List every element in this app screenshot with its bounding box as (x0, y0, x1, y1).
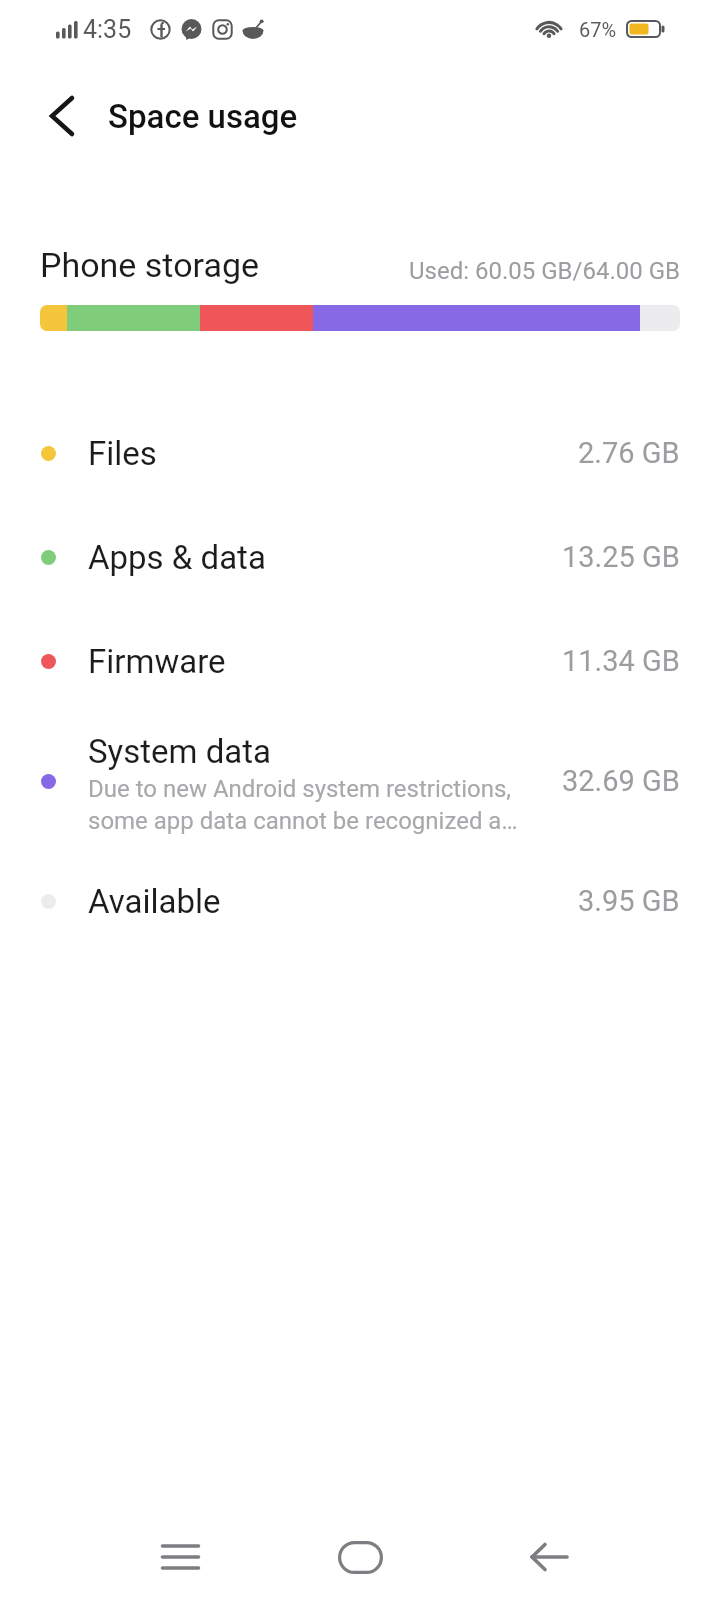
staticText: 2.76 GB (578, 436, 680, 470)
staticText: Used: 60.05 GB/64.00 GB (409, 257, 680, 285)
staticText: 67% (579, 18, 617, 41)
staticText: Available (88, 882, 221, 921)
staticText: Firmware (88, 642, 226, 681)
staticText: 3.95 GB (578, 884, 680, 918)
staticText: 32.69 GB (562, 764, 680, 798)
button[interactable]: Available (0, 849, 720, 953)
staticText: 4:35 (83, 15, 132, 44)
staticText: 13.25 GB (562, 540, 680, 574)
staticText: Due to new Android system restrictions, … (88, 775, 518, 834)
button[interactable] (130, 1514, 230, 1600)
button[interactable] (499, 1514, 599, 1600)
staticText: Phone storage (40, 245, 260, 285)
staticText: 11.34 GB (562, 644, 680, 678)
button[interactable]: Apps & data (0, 505, 720, 609)
button[interactable] (310, 1514, 410, 1600)
button[interactable] (36, 90, 88, 142)
button[interactable]: Firmware (0, 609, 720, 713)
staticText: Space usage (108, 97, 298, 136)
staticText: Apps & data (88, 538, 266, 577)
button[interactable]: System data (0, 713, 720, 849)
staticText: System data (88, 732, 271, 771)
button[interactable]: Files (0, 401, 720, 505)
staticText: Files (88, 434, 157, 473)
